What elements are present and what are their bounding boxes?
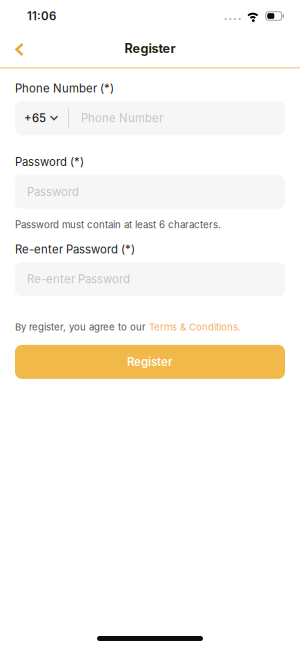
staticText: Register — [124, 41, 175, 56]
staticText: By register, you agree to our — [15, 321, 149, 333]
staticText: Re-enter Password — [27, 272, 130, 286]
staticText: +65 — [24, 111, 46, 125]
button[interactable]: Back — [0, 34, 26, 65]
staticText: Register — [127, 355, 173, 369]
staticText: 11:06 — [27, 9, 56, 23]
staticText: Password — [27, 185, 79, 199]
staticText: Re-enter Password (*) — [15, 243, 135, 256]
button[interactable]: Country code +65 — [15, 111, 68, 125]
staticText: Phone Number (*) — [15, 81, 114, 95]
staticText: Password must contain at least 6 charact… — [15, 219, 221, 230]
staticText: Terms & Conditions. — [149, 321, 241, 333]
button[interactable]: Terms & Conditions. — [149, 321, 241, 333]
staticText: Phone Number — [81, 111, 163, 125]
button[interactable]: Register — [15, 345, 285, 379]
staticText: Password (*) — [15, 155, 84, 169]
